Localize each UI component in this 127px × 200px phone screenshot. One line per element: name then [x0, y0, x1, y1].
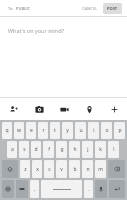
staticText: r [42, 127, 45, 134]
staticText: s [23, 146, 26, 153]
staticText: p [118, 127, 122, 134]
button[interactable]: Enter [109, 180, 125, 198]
button[interactable]: b [69, 160, 80, 178]
staticText: v [60, 166, 63, 173]
button[interactable]: u [75, 122, 86, 139]
button[interactable]: Symbols [16, 180, 28, 198]
button[interactable]: e [26, 122, 36, 139]
button[interactable]: n [82, 160, 93, 178]
button[interactable]: Record video [52, 98, 77, 120]
staticText: f [48, 146, 50, 153]
staticText: b [73, 166, 77, 173]
staticText: u [79, 127, 83, 134]
button[interactable]: g [56, 141, 67, 158]
staticText: . [88, 186, 90, 193]
staticText: To: [8, 6, 14, 11]
staticText: q [5, 127, 9, 134]
button[interactable]: y [62, 122, 73, 139]
button[interactable]: To: [5, 4, 34, 13]
button[interactable]: z [20, 160, 30, 178]
staticText: t [54, 127, 56, 134]
staticText: d [34, 146, 38, 153]
button[interactable]: j [82, 141, 93, 158]
button[interactable]: , [30, 180, 39, 198]
button[interactable]: Tag people [0, 98, 26, 120]
staticText: e [30, 127, 33, 134]
button[interactable]: CANCEL [79, 3, 100, 14]
button[interactable]: f [43, 141, 54, 158]
button[interactable]: Emoji [2, 180, 14, 198]
button[interactable]: r [38, 122, 48, 139]
button[interactable]: Add location [77, 98, 102, 120]
button[interactable]: x [32, 160, 42, 178]
button[interactable]: o [101, 122, 112, 139]
staticText: a [11, 146, 14, 153]
button[interactable]: Take photo [26, 98, 52, 120]
staticText: , [34, 186, 36, 193]
staticText: j [87, 146, 89, 153]
button[interactable] [41, 180, 82, 198]
staticText: l [113, 146, 115, 153]
staticText: k [99, 146, 102, 153]
staticText: c [48, 166, 51, 173]
button[interactable]: q [2, 122, 12, 139]
button[interactable]: Voice input [95, 180, 107, 198]
staticText: PUBLIC [16, 6, 31, 11]
button[interactable]: p [114, 122, 125, 139]
button[interactable]: d [31, 141, 41, 158]
staticText: What's on your mind? [8, 27, 64, 34]
button[interactable]: v [56, 160, 67, 178]
staticText: CANCEL [82, 6, 97, 11]
button[interactable]: i [88, 122, 99, 139]
staticText: i [93, 127, 95, 134]
button[interactable]: l [108, 141, 119, 158]
button[interactable]: Backspace [108, 160, 125, 178]
staticText: POST [107, 6, 118, 11]
staticText: n [86, 166, 90, 173]
button[interactable]: m [95, 160, 106, 178]
button[interactable]: POST [103, 3, 122, 14]
button[interactable]: c [44, 160, 54, 178]
staticText: z [24, 166, 27, 173]
staticText: o [105, 127, 109, 134]
staticText: h [73, 146, 77, 153]
staticText: m [98, 166, 103, 173]
button[interactable]: t [50, 122, 60, 139]
staticText: x [36, 166, 39, 173]
button[interactable]: k [95, 141, 106, 158]
staticText: y [66, 127, 69, 134]
button[interactable]: . [84, 180, 93, 198]
staticText: g [60, 146, 64, 153]
button[interactable]: h [69, 141, 80, 158]
button[interactable]: w [14, 122, 24, 139]
button[interactable]: More options [102, 98, 127, 120]
staticText: w [17, 127, 21, 134]
button[interactable]: s [19, 141, 29, 158]
button[interactable]: a [7, 141, 17, 158]
button[interactable]: What's on your mind? [0, 17, 127, 97]
button[interactable]: Shift [2, 160, 18, 178]
